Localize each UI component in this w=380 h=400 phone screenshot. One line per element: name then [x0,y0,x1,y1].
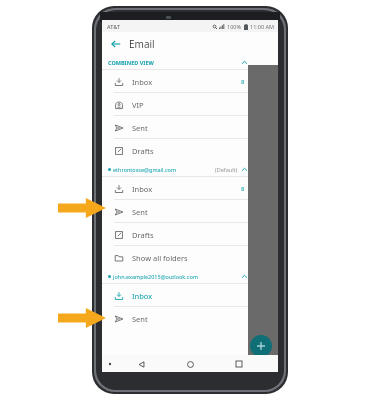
staticText: Sent [132,123,148,133]
button[interactable]: COMBINED VIEW [102,55,278,70]
staticText: Sent [132,207,148,217]
staticText: Inbox [132,291,153,301]
button[interactable]: Inbox [102,177,278,200]
staticText: (Default) [215,166,238,173]
button[interactable]: Inbox [102,284,278,307]
staticText: VIP [132,100,144,110]
button[interactable]: Back [108,36,124,52]
staticText: Show all folders [132,253,188,263]
button[interactable]: Drafts [102,139,278,162]
staticText: COMBINED VIEW [108,59,154,66]
button[interactable]: Drafts [102,223,278,246]
button[interactable]: VIP [102,93,278,116]
staticText: Drafts [132,230,154,240]
staticText: Inbox [132,184,153,194]
button[interactable]: Sent [102,116,278,139]
staticText: AT&T [107,23,121,30]
staticText: 8 [241,78,245,86]
button[interactable]: Home [183,357,197,371]
staticText: ethrontosse@gmail.com [113,166,177,173]
button[interactable]: Sent [102,307,278,330]
button[interactable]: Back [134,357,148,371]
staticText: Email [129,37,155,51]
button[interactable]: Recents [232,357,246,371]
button[interactable]: Compose [250,335,272,357]
staticText: john.example2015@outlook.com [113,273,198,280]
staticText: 11:00 AM [250,23,274,30]
button[interactable]: Inbox [102,70,278,93]
button[interactable]: ethrontosse@gmail.com [102,162,278,177]
button[interactable]: Show all folders [102,246,278,269]
staticText: 8 [241,185,245,193]
staticText: Sent [132,314,148,324]
staticText: Inbox [132,77,153,87]
button[interactable]: Sent [102,200,278,223]
button[interactable]: john.example2015@outlook.com [102,269,278,284]
staticText: 100% [227,23,242,30]
staticText: Drafts [132,146,154,156]
